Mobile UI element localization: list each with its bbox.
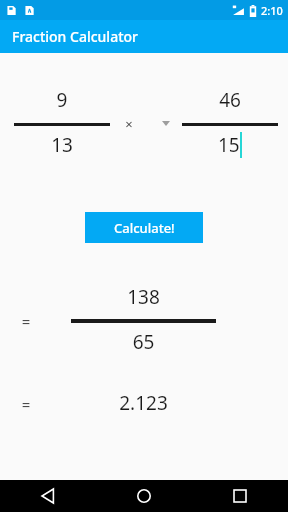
staticText: 65 (71, 329, 216, 355)
button[interactable]: × (120, 115, 138, 133)
staticText: = (18, 394, 34, 414)
staticText: 138 (71, 284, 216, 310)
button[interactable]: 13 (14, 132, 110, 158)
button[interactable]: Back (0, 480, 96, 512)
staticText: 2:10 (261, 3, 283, 18)
staticText: Calculate! (114, 219, 175, 237)
staticText: = (18, 311, 34, 331)
button[interactable]: Calculate! (85, 212, 203, 243)
staticText: Fraction Calculator (12, 27, 138, 46)
staticText: 2.123 (71, 390, 216, 416)
button[interactable]: Recent apps (192, 480, 288, 512)
button[interactable]: 9 (14, 87, 110, 113)
button[interactable]: Home (96, 480, 192, 512)
button[interactable]: Select operation (158, 115, 174, 131)
staticText: 15 (218, 132, 240, 158)
button[interactable]: 46 (182, 87, 278, 113)
button[interactable]: 15 (182, 132, 278, 158)
